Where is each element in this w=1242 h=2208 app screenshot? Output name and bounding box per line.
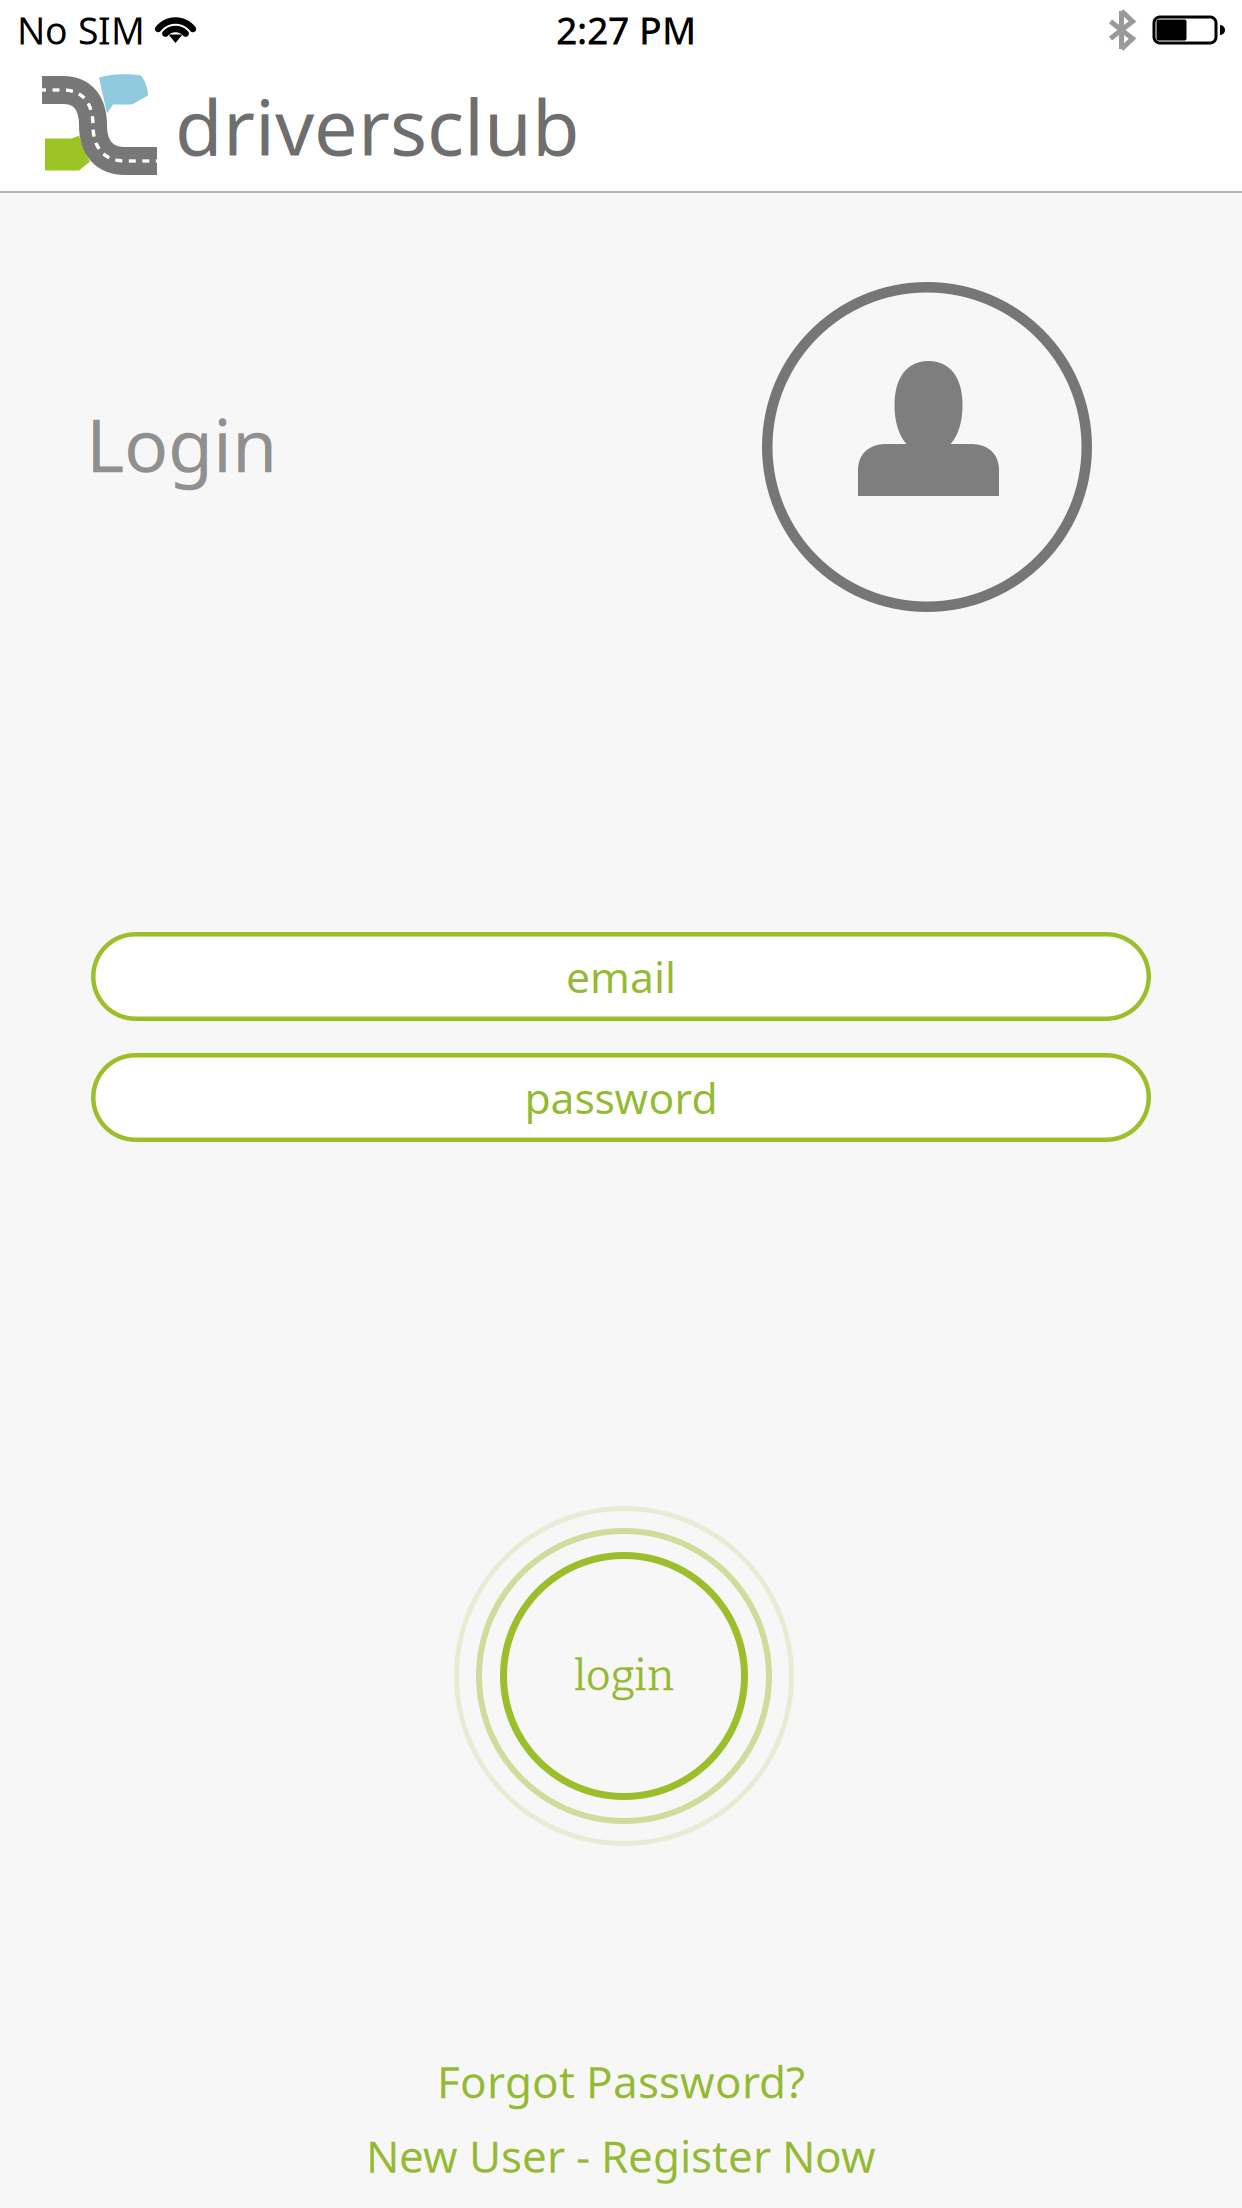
button[interactable]: New User - Register Now bbox=[366, 2126, 876, 2185]
button[interactable]: Profile photo bbox=[762, 282, 1092, 612]
staticText: login bbox=[574, 1650, 674, 1702]
staticText: email bbox=[566, 948, 676, 1005]
staticText: No SIM bbox=[17, 5, 145, 55]
button[interactable]: password bbox=[91, 1053, 1151, 1142]
staticText: New User - Register Now bbox=[366, 2126, 876, 2185]
staticText: 2:27 PM bbox=[556, 5, 696, 55]
button[interactable]: login bbox=[450, 1502, 798, 1850]
staticText: password bbox=[524, 1069, 717, 1126]
button[interactable]: email bbox=[91, 932, 1151, 1021]
button[interactable]: Forgot Password? bbox=[437, 2052, 805, 2110]
staticText: Login bbox=[86, 395, 277, 492]
staticText: Forgot Password? bbox=[437, 2052, 805, 2110]
staticText: driversclub bbox=[175, 74, 580, 177]
